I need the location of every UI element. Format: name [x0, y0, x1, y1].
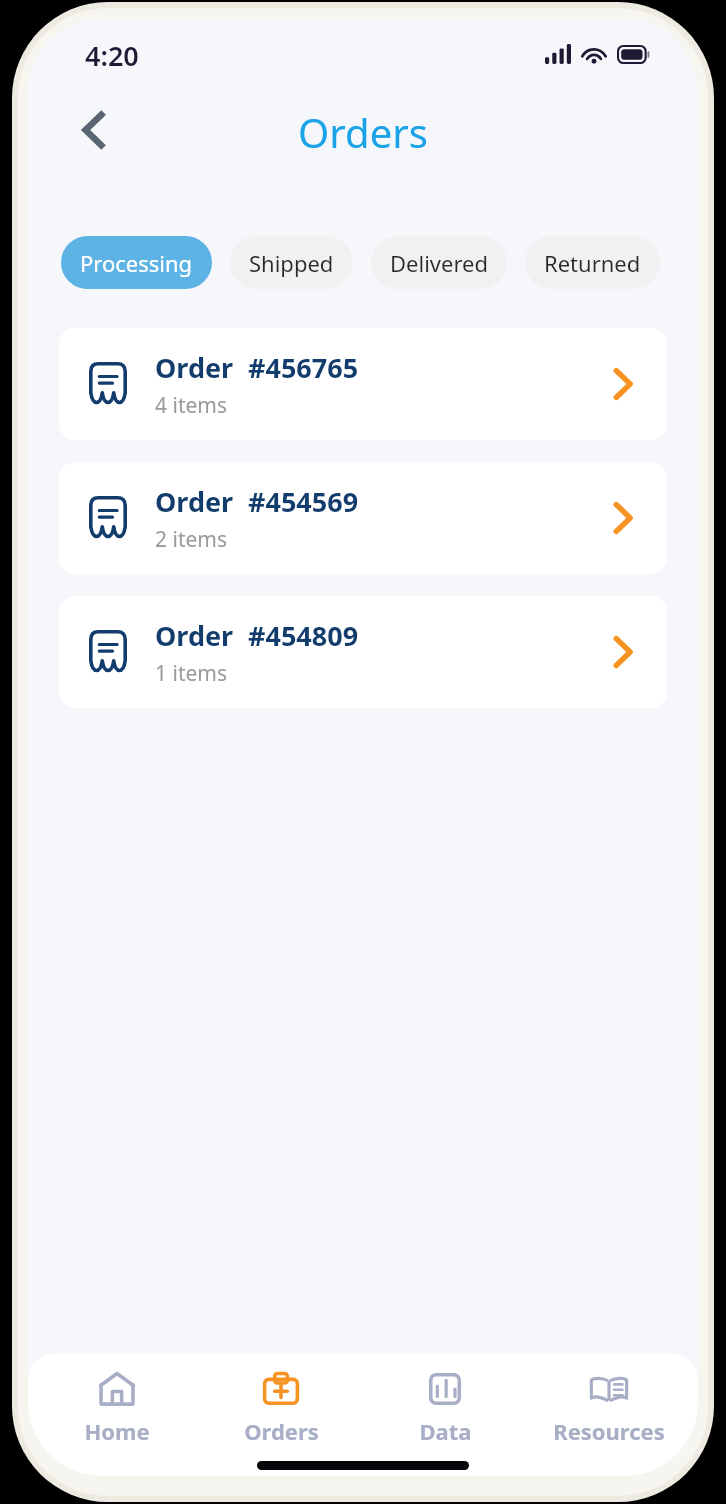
staticText: 4:20	[85, 37, 139, 74]
staticText: Resources	[553, 1416, 665, 1446]
button[interactable]: Delivered	[371, 236, 507, 289]
staticText: Home	[84, 1416, 150, 1446]
staticText: Order	[155, 617, 234, 654]
staticText: Order	[155, 483, 234, 520]
staticText: Returned	[544, 248, 641, 278]
staticText: Orders	[298, 105, 428, 159]
button[interactable]: Resources	[534, 1368, 684, 1446]
staticText: 2 items	[155, 525, 228, 554]
button[interactable]: Order	[59, 328, 667, 440]
staticText: #456765	[248, 349, 359, 386]
staticText: 1 items	[155, 659, 228, 688]
staticText: Shipped	[249, 248, 334, 278]
staticText: Processing	[80, 248, 193, 278]
staticText: Orders	[244, 1416, 319, 1446]
button[interactable]: Orders	[206, 1368, 356, 1446]
staticText: Data	[419, 1416, 472, 1446]
button[interactable]: Order	[59, 596, 667, 708]
staticText: #454809	[248, 617, 359, 654]
button[interactable]: Home	[42, 1368, 192, 1446]
staticText: Order	[155, 349, 234, 386]
staticText: #454569	[248, 483, 359, 520]
staticText: 4 items	[155, 391, 228, 420]
staticText: Delivered	[390, 248, 488, 278]
button[interactable]: Back	[66, 102, 122, 158]
button[interactable]: Open order #454809	[595, 624, 651, 680]
button[interactable]: Order	[59, 462, 667, 574]
button[interactable]: Open order #456765	[595, 356, 651, 412]
button[interactable]: Shipped	[230, 236, 353, 289]
button[interactable]: Open order #454569	[595, 490, 651, 546]
button[interactable]: Returned	[525, 236, 660, 289]
button[interactable]: Processing	[61, 236, 212, 289]
button[interactable]: Data	[370, 1368, 520, 1446]
